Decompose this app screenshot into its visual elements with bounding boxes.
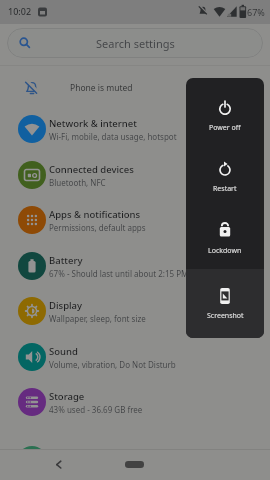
staticText: Lockdown [208,246,242,256]
staticText: Phone is muted [70,82,133,94]
staticText: Bluetooth, NFC [49,177,106,188]
button[interactable] [186,206,264,269]
button[interactable] [186,142,264,206]
button[interactable]: Connected devices [0,152,270,198]
button[interactable]: Storage [0,379,270,425]
staticText: Power off [209,123,241,133]
staticText: Apps & notifications [49,208,141,221]
staticText: Restart [213,184,237,194]
staticText: Connected devices [49,163,134,176]
button[interactable] [125,461,144,468]
button[interactable]: Display [0,288,270,334]
button[interactable]: Apps & notifications [0,197,270,243]
staticText: Screenshot [207,311,244,321]
staticText: Battery [49,254,83,267]
staticText: Search settings [96,36,175,51]
button[interactable] [186,269,264,338]
staticText: 43% used - 36.69 GB free [49,404,143,415]
staticText: Permissions, default apps [49,222,146,233]
button[interactable]: Search settings [7,28,263,58]
staticText: Network & internet [49,117,137,130]
staticText: 67% - Should last until about 2:15 PM [49,268,189,279]
button[interactable] [186,78,264,142]
button[interactable]: Sound [0,334,270,380]
staticText: Storage [49,390,85,403]
button[interactable]: Battery [0,243,270,289]
staticText: 67% [247,6,265,18]
staticText: Sound [49,345,78,358]
staticText: Wi-Fi, mobile, data usage, hotspot [49,131,177,142]
staticText: Wallpaper, sleep, font size [49,313,146,324]
button[interactable]: Phone is muted [0,66,270,106]
button[interactable]: Network & internet [0,106,270,152]
button[interactable] [52,458,64,470]
staticText: Volume, vibration, Do Not Disturb [49,359,176,370]
staticText: Display [49,299,83,312]
staticText: 10:02 [8,5,32,17]
